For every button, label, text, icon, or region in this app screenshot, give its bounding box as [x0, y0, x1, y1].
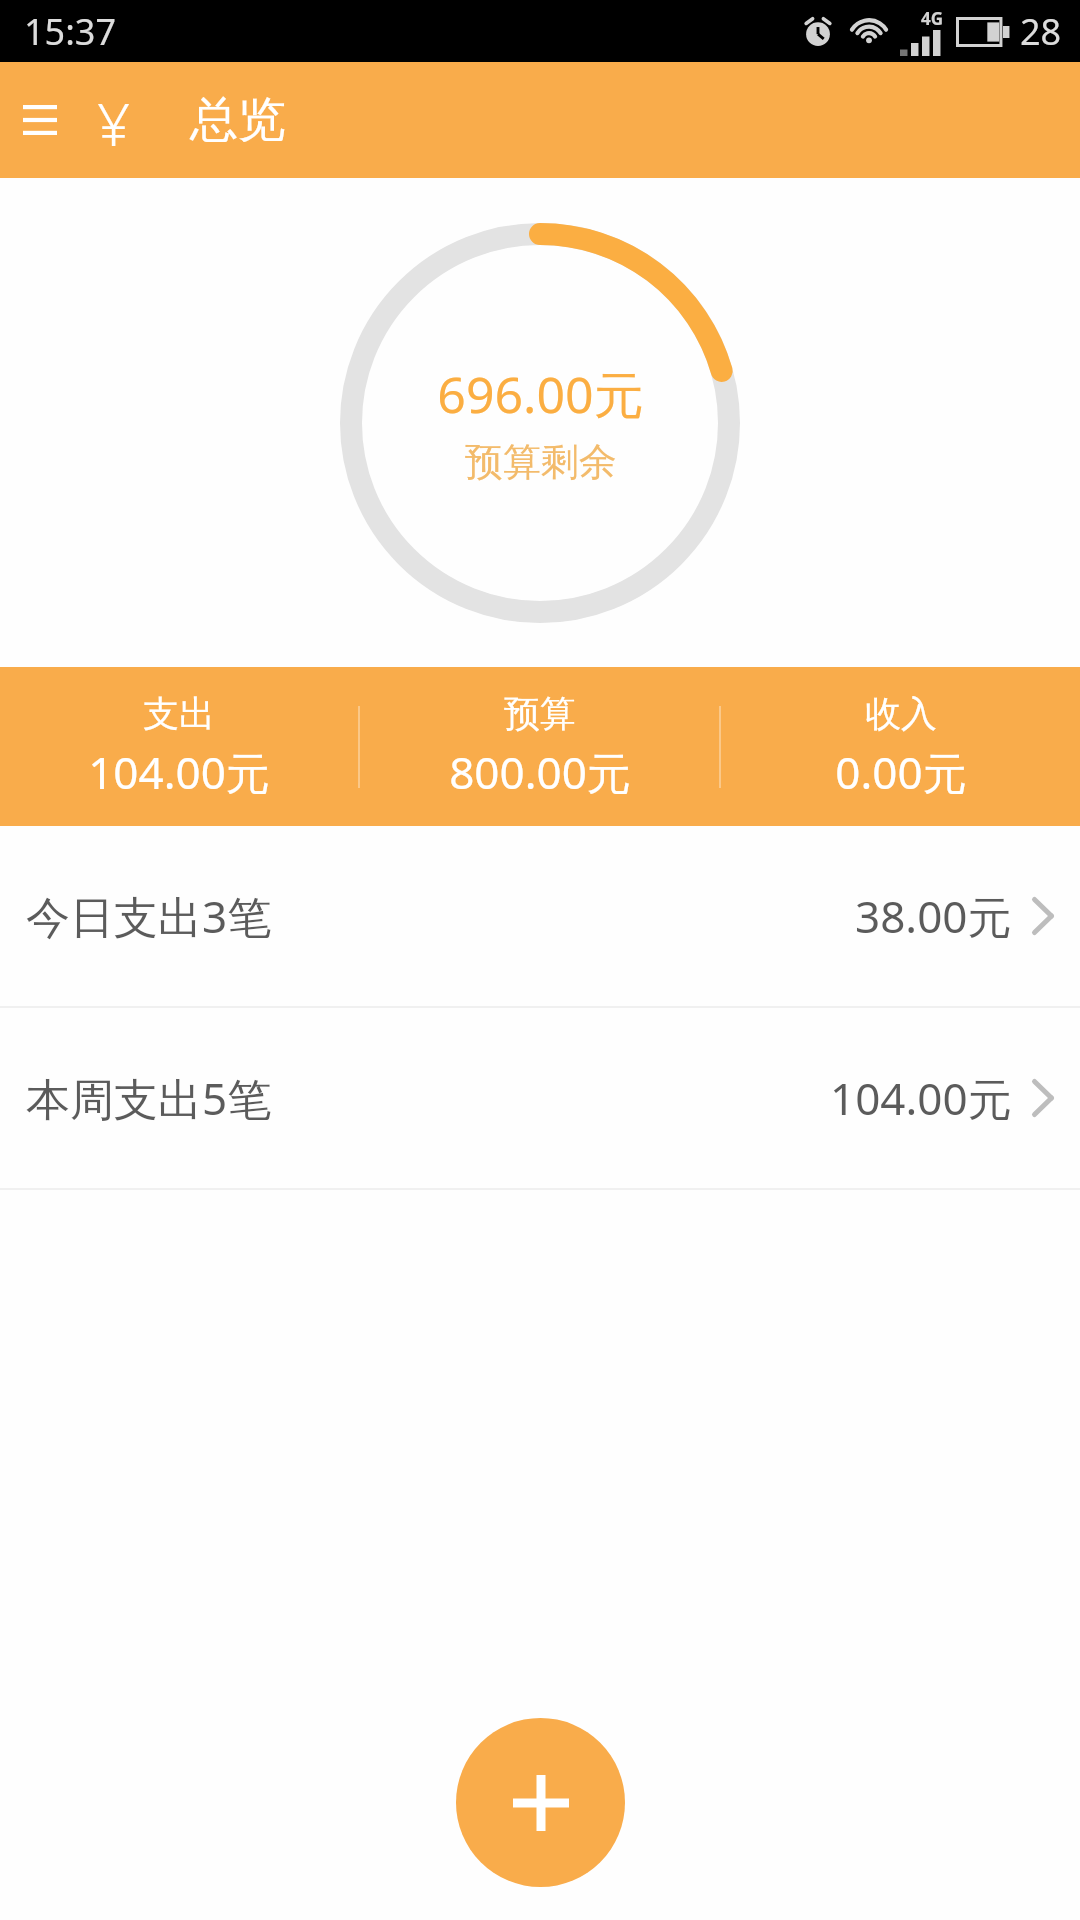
staticText: 预算剩余 — [465, 438, 617, 486]
staticText: 800.00元 — [449, 742, 631, 802]
staticText: 总览 — [190, 90, 286, 150]
staticText: 本周支出5笔 — [26, 1068, 272, 1128]
button[interactable]: Open menu — [8, 88, 72, 152]
button[interactable]: 收入 — [721, 691, 1080, 802]
staticText: 104.00元 — [88, 742, 270, 802]
button[interactable]: 本周支出5笔 — [0, 1008, 1080, 1188]
staticText: 0.00元 — [835, 742, 967, 802]
staticText: 696.00元 — [437, 360, 644, 428]
staticText: ¥ — [97, 84, 131, 156]
staticText: 28 — [1020, 7, 1062, 56]
button[interactable]: 支出 — [0, 691, 358, 802]
staticText: 收入 — [865, 691, 937, 736]
button[interactable]: Add record — [456, 1718, 625, 1887]
staticText: 38.00元 — [855, 886, 1012, 946]
button[interactable]: 今日支出3笔 — [0, 826, 1080, 1006]
staticText: 预算 — [504, 691, 576, 736]
button[interactable]: Currency — [78, 84, 150, 156]
staticText: 104.00元 — [830, 1068, 1012, 1128]
button[interactable]: 预算 — [360, 691, 719, 802]
staticText: 15:37 — [24, 7, 117, 56]
staticText: 4G — [921, 7, 944, 30]
staticText: 支出 — [143, 691, 215, 736]
staticText: 今日支出3笔 — [26, 886, 272, 946]
